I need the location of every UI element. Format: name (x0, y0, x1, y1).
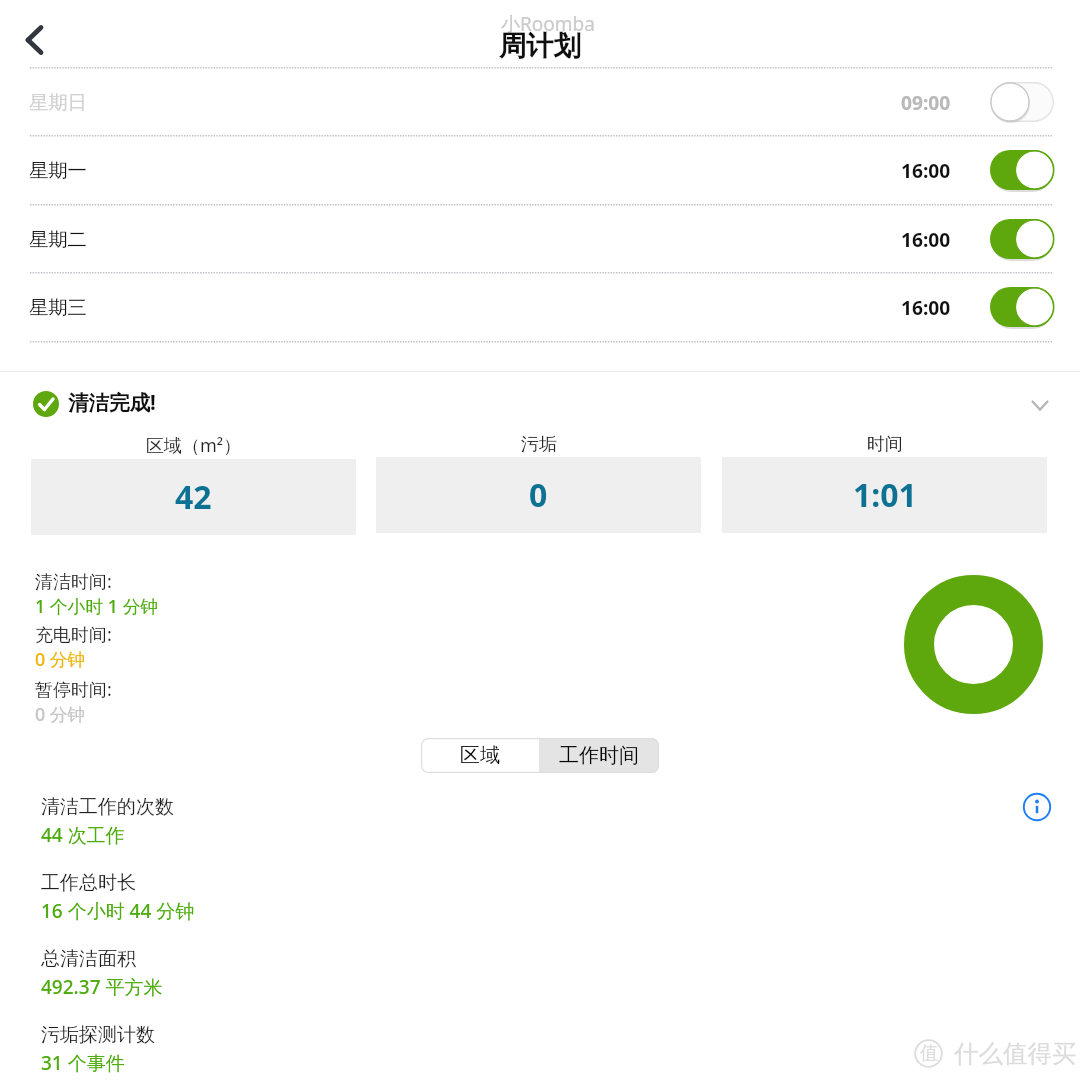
staticText: 时间 (867, 433, 903, 456)
staticText: 42 (175, 475, 212, 519)
staticText: 星期三 (29, 295, 87, 319)
button[interactable]: 42 (31, 459, 356, 535)
staticText: 星期一 (29, 158, 87, 182)
staticText: 1:01 (853, 473, 917, 517)
button[interactable]: 0 (376, 457, 701, 533)
staticText: 16:00 (901, 294, 951, 320)
staticText: 清洁完成! (68, 388, 156, 416)
button[interactable]: 星期三 (0, 273, 1080, 341)
button[interactable]: 星期日 (0, 68, 1080, 136)
staticText: 31 个事件 (41, 1050, 125, 1076)
staticText: 周计划 (499, 29, 581, 63)
staticText: 污垢探测计数 (41, 1023, 155, 1047)
staticText: 污垢 (521, 433, 557, 456)
button[interactable]: Schedule enabled (990, 287, 1054, 327)
staticText: 清洁时间: (35, 569, 112, 594)
staticText: 充电时间: (35, 622, 112, 647)
button[interactable]: 星期一 (0, 136, 1080, 204)
staticText: 16 个小时 44 分钟 (41, 898, 195, 924)
staticText: 0 (529, 473, 548, 517)
staticText: 清洁工作的次数 (41, 795, 174, 819)
button[interactable]: 星期二 (0, 205, 1080, 273)
staticText: 工作总时长 (41, 871, 136, 895)
button[interactable]: 1:01 (722, 457, 1047, 533)
button[interactable]: Schedule enabled (990, 219, 1054, 259)
button[interactable]: Schedule enabled (990, 150, 1054, 190)
staticText: 16:00 (901, 226, 951, 252)
staticText: 什么值得买 (954, 1038, 1077, 1069)
button[interactable]: 区域 (421, 738, 539, 773)
staticText: 星期二 (29, 227, 87, 251)
button[interactable]: Schedule disabled (990, 82, 1054, 122)
button[interactable]: Back (4, 10, 64, 70)
staticText: 09:00 (901, 89, 951, 115)
staticText: 区域（m²） (146, 433, 242, 458)
staticText: 44 次工作 (41, 822, 125, 848)
button[interactable]: Info (1017, 787, 1057, 827)
staticText: 0 分钟 (35, 647, 86, 671)
staticText: 值 (920, 1042, 938, 1065)
staticText: 区域 (460, 743, 500, 768)
staticText: 1 个小时 1 分钟 (35, 594, 159, 618)
staticText: 暂停时间: (35, 677, 112, 702)
button[interactable]: Collapse (1020, 385, 1060, 425)
staticText: 0 分钟 (35, 702, 86, 726)
button[interactable]: 工作时间 (539, 738, 659, 773)
staticText: 16:00 (901, 157, 951, 183)
staticText: 总清洁面积 (41, 947, 136, 971)
staticText: 小Roomba (501, 11, 595, 37)
staticText: 492.37 平方米 (41, 974, 163, 1000)
staticText: 星期日 (29, 90, 87, 114)
staticText: 工作时间 (559, 743, 639, 768)
